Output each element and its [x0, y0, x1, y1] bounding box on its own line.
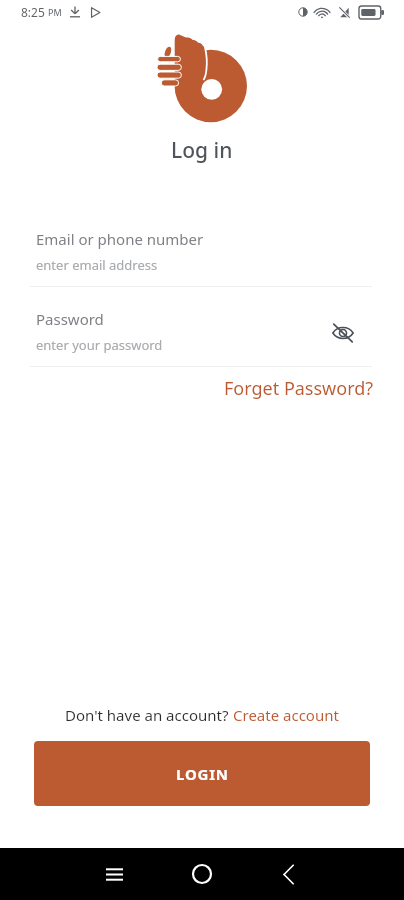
button[interactable]: Create account — [233, 705, 339, 725]
staticText: enter your password — [36, 336, 163, 354]
staticText: Log in — [171, 136, 233, 165]
button[interactable]: Home — [180, 852, 224, 896]
staticText: enter email address — [36, 256, 158, 274]
staticText: Create account — [233, 705, 339, 725]
staticText: Password — [36, 309, 104, 329]
button[interactable]: Show password — [326, 316, 360, 350]
button[interactable]: Forget Password? — [222, 374, 376, 403]
staticText: Don't have an account? — [65, 705, 233, 725]
staticText: Forget Password? — [224, 376, 374, 401]
staticText: 8:25 — [21, 4, 45, 20]
staticText: PM — [48, 6, 62, 18]
button[interactable]: Recent apps — [92, 852, 136, 896]
staticText: Email or phone number — [36, 229, 204, 249]
staticText: LOGIN — [176, 764, 229, 784]
button[interactable]: Back — [266, 852, 310, 896]
button[interactable]: LOGIN — [34, 741, 370, 806]
